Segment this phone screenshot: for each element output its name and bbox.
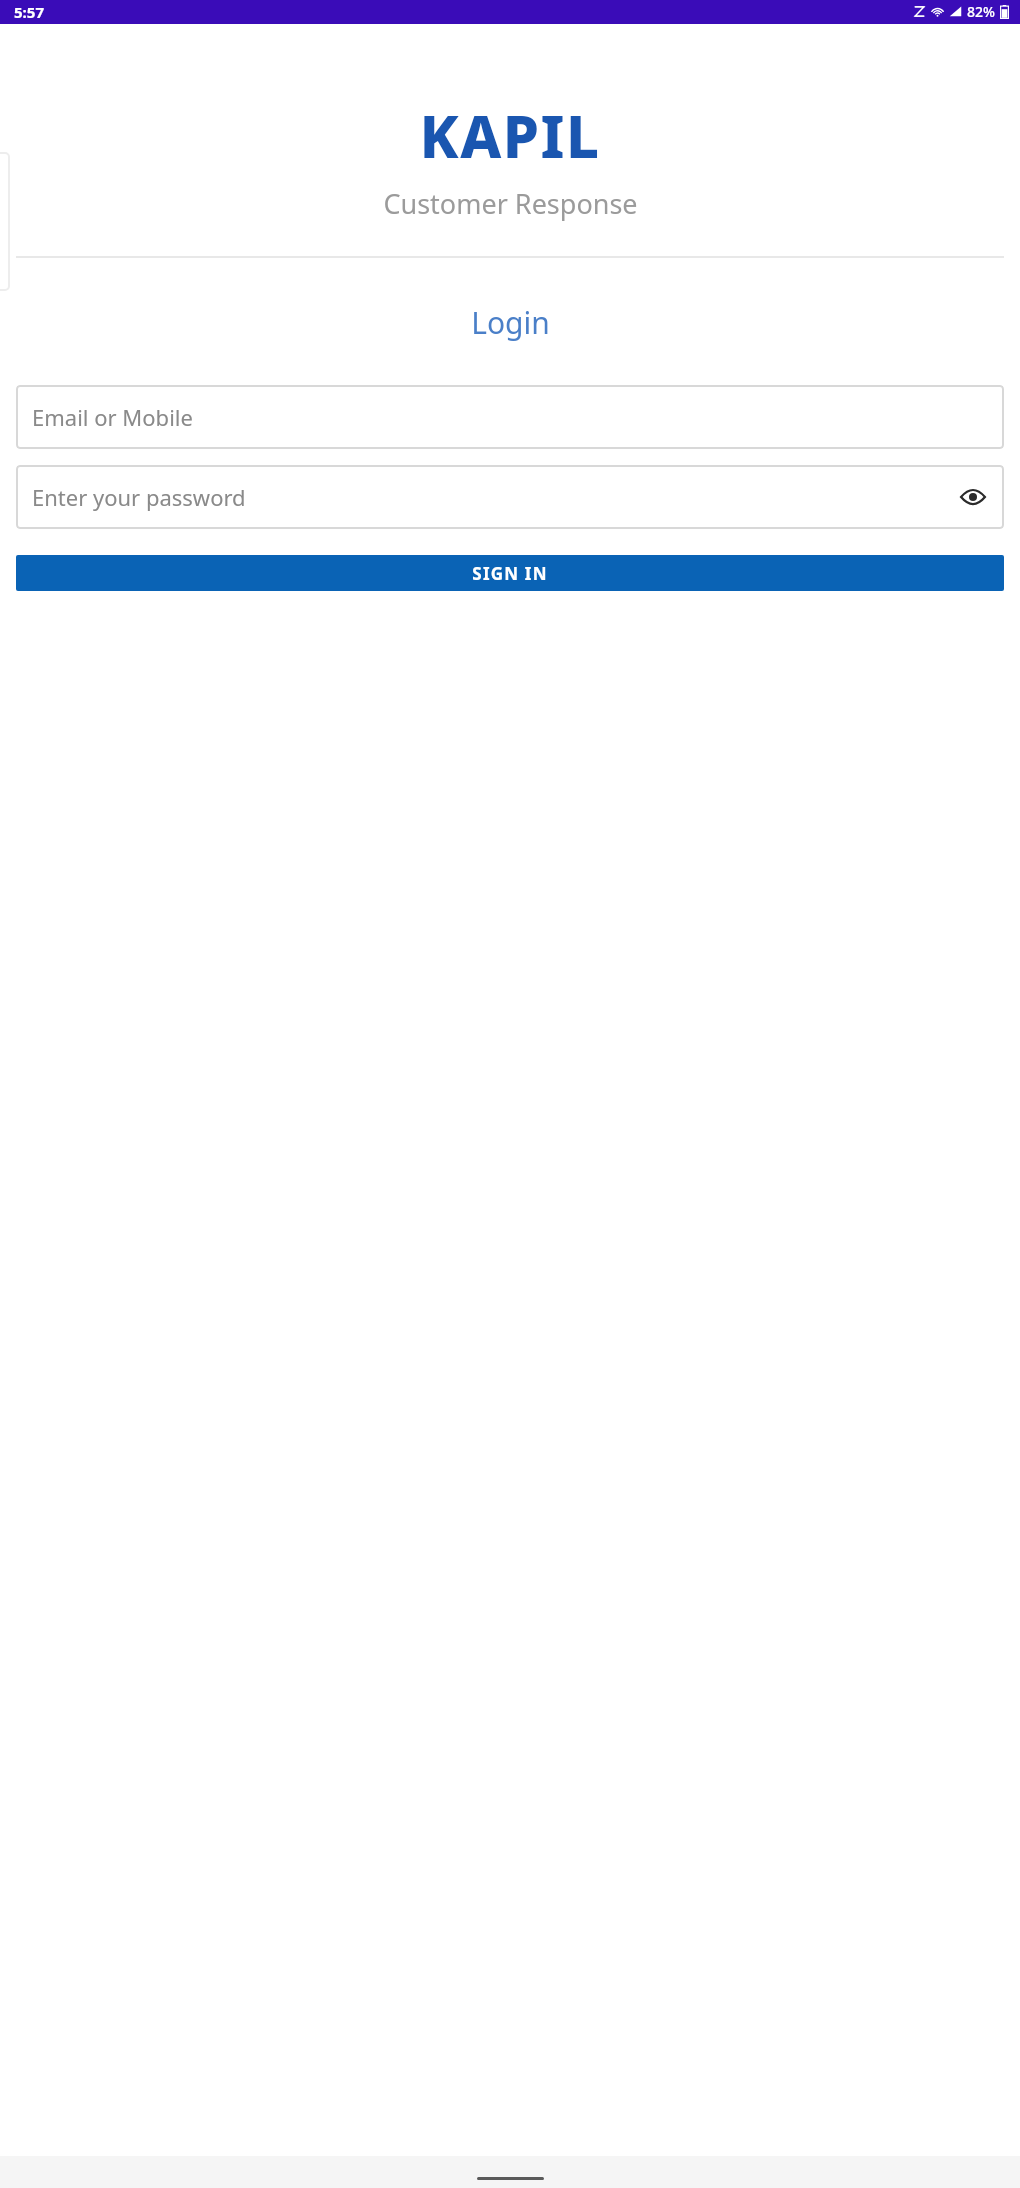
staticText: Enter your password xyxy=(32,482,956,512)
staticText: 5:57 xyxy=(14,2,44,22)
staticText: KAPIL xyxy=(419,96,601,175)
button[interactable]: SIGN IN xyxy=(16,555,1004,591)
button[interactable]: Enter your password xyxy=(16,465,1004,529)
staticText: SIGN IN xyxy=(472,562,548,585)
staticText: Login xyxy=(471,302,550,343)
staticText: Email or Mobile xyxy=(32,402,990,432)
staticText: 82% xyxy=(967,2,995,21)
staticText: Customer Response xyxy=(383,185,638,222)
button[interactable]: Email or Mobile xyxy=(16,385,1004,449)
button[interactable]: Show password xyxy=(956,480,990,514)
